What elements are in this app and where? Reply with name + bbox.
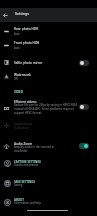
button[interactable] [0, 138, 97, 155]
staticText: Amplify audio in the zoomed in viewfinde… [14, 145, 80, 152]
button[interactable] [0, 69, 97, 83]
staticText: SAVE SETTINGS [14, 180, 35, 184]
staticText: Watermark [14, 73, 31, 77]
staticText: Stabilization [14, 126, 29, 130]
button[interactable] [0, 53, 97, 69]
staticText: Audio Zoom [14, 142, 33, 146]
staticText: Stabilization [14, 122, 33, 126]
button[interactable] [0, 118, 97, 132]
staticText: VIDEO [14, 90, 24, 94]
staticText: Front photo HDR [14, 41, 40, 45]
button[interactable]: Toggle [79, 60, 89, 66]
staticText: Settings [15, 11, 29, 16]
staticText: CAPTURE SETTINGS [14, 160, 41, 164]
staticText: ABOUT [14, 198, 24, 202]
staticText: Auto [14, 32, 20, 36]
staticText: Selfie photo mirror [14, 61, 43, 65]
button[interactable]: Back [0, 10, 11, 21]
button[interactable] [0, 38, 97, 52]
staticText: Information and help [14, 201, 41, 205]
button[interactable] [0, 156, 97, 175]
button[interactable] [0, 95, 97, 116]
button[interactable] [0, 24, 97, 38]
button[interactable] [0, 175, 97, 194]
staticText: Saving [14, 183, 23, 187]
button[interactable] [0, 194, 97, 213]
staticText: Off [14, 77, 18, 81]
staticText: Efficient videos [14, 100, 37, 104]
button[interactable]: Toggle [79, 104, 89, 110]
staticText: Rear photo HDR [14, 27, 39, 31]
staticText: Reduce file size for 24fps by saving in … [14, 103, 80, 115]
staticText: Guides and presets [14, 163, 39, 167]
staticText: Auto [14, 46, 20, 50]
button[interactable]: Toggle [79, 143, 89, 149]
